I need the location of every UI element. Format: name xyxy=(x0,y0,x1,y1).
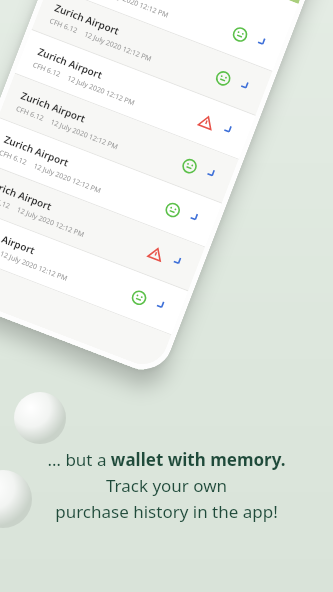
staticText: CFH 6.12 xyxy=(14,104,45,124)
button[interactable]: Zurich Airport xyxy=(0,162,205,291)
button[interactable]: Zurich Airport xyxy=(48,0,289,72)
staticText: Track your own xyxy=(12,474,321,497)
button[interactable]: Zurich Airport xyxy=(0,205,188,335)
staticText: … but a wallet with memory. xyxy=(12,448,321,471)
staticText: CFH 6.12 xyxy=(0,192,11,211)
staticText: 12 July 2020 12:12 PM xyxy=(15,205,86,240)
staticText: Zurich Airport xyxy=(36,44,105,82)
button[interactable]: All orders xyxy=(65,0,298,28)
button[interactable]: Zurich Airport xyxy=(0,118,222,248)
staticText: CFH 6.12 xyxy=(0,148,28,168)
staticText: 12 July 2020 12:12 PM xyxy=(0,249,69,284)
staticText: Zurich Airport xyxy=(2,132,71,170)
staticText: Zurich Airport xyxy=(0,176,55,214)
staticText: Zurich Airport xyxy=(19,88,88,126)
button[interactable]: Zurich Airport xyxy=(31,0,272,116)
button[interactable]: Zurich Airport xyxy=(14,30,255,160)
staticText: 12 July 2020 12:12 PM xyxy=(32,161,103,196)
button[interactable]: Zurich Airport xyxy=(0,74,239,204)
staticText: Zurich Airport xyxy=(53,0,122,38)
staticText: 12 July 2020 12:12 PM xyxy=(49,117,120,152)
staticText: purchase history in the app! xyxy=(12,500,321,523)
staticText: 12 July 2020 12:12 PM xyxy=(99,0,170,21)
staticText: CFH 6.12 xyxy=(48,16,79,36)
staticText: 12 July 2020 12:12 PM xyxy=(66,73,136,108)
staticText: 12 July 2020 12:12 PM xyxy=(83,29,153,65)
staticText: Zurich Airport xyxy=(0,220,38,258)
staticText: CFH 6.12 xyxy=(31,60,62,80)
